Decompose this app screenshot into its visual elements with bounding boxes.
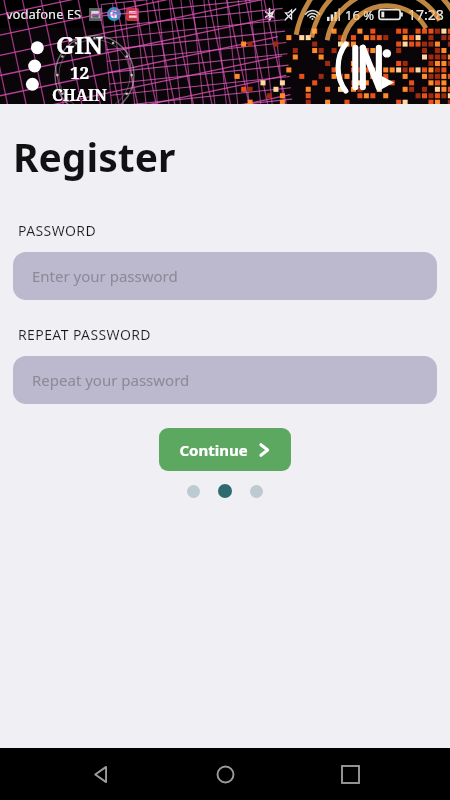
staticText: vodafone ES: [6, 5, 82, 23]
staticText: PASSWORD: [18, 221, 97, 240]
staticText: Continue: [179, 440, 248, 460]
button[interactable]: Continue: [159, 428, 291, 471]
button[interactable]: Page 1: [187, 485, 200, 498]
button[interactable]: Back: [77, 750, 125, 798]
button[interactable]: Enter your password: [13, 252, 437, 300]
button[interactable]: Page 3: [250, 485, 263, 498]
button[interactable]: Recents: [326, 750, 374, 798]
staticText: REPEAT PASSWORD: [18, 325, 151, 344]
staticText: G: [110, 7, 118, 21]
staticText: 12: [70, 61, 90, 84]
staticText: Enter your password: [32, 266, 178, 286]
button[interactable]: Home: [201, 750, 249, 798]
staticText: CHAIN: [52, 84, 107, 104]
staticText: 16 %: [345, 6, 375, 24]
staticText: Repeat your password: [32, 370, 190, 390]
staticText: Register: [13, 130, 176, 183]
staticText: GIN: [56, 28, 104, 61]
staticText: 17:28: [408, 5, 444, 24]
button[interactable]: Repeat your password: [13, 356, 437, 404]
button[interactable]: Page 2: [218, 484, 232, 498]
